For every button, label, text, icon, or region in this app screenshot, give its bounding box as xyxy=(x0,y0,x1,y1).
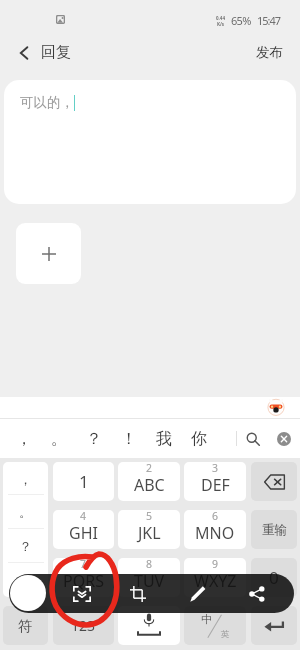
button[interactable]: Edit xyxy=(184,580,212,608)
staticText: ！ xyxy=(19,572,32,588)
button[interactable]: 你 xyxy=(181,419,216,458)
button[interactable]: 2 xyxy=(118,462,180,501)
staticText: 重输 xyxy=(262,522,287,538)
staticText: 5 xyxy=(146,510,153,523)
staticText: 英 xyxy=(221,629,230,640)
button[interactable]: 符 xyxy=(3,606,48,645)
staticText: 2 xyxy=(146,462,153,475)
staticText: ！ xyxy=(121,429,137,449)
staticText: 。 xyxy=(19,504,32,520)
staticText: ， xyxy=(19,471,32,487)
staticText: ？ xyxy=(19,538,32,554)
button[interactable]: 7 xyxy=(53,558,114,597)
staticText: PQRS xyxy=(63,570,104,592)
button[interactable]: Scroll capture xyxy=(67,580,97,608)
button[interactable]: Add image xyxy=(16,223,81,284)
staticText: GHI xyxy=(69,522,98,544)
staticText: WXYZ xyxy=(194,570,237,592)
button[interactable]: Crop xyxy=(124,580,152,608)
button[interactable] xyxy=(118,606,180,645)
button[interactable]: ？ xyxy=(3,529,48,563)
button[interactable]: ， xyxy=(6,419,41,458)
staticText: 15:47 xyxy=(257,13,281,28)
button[interactable]: 我 xyxy=(146,419,181,458)
button[interactable]: Search xyxy=(237,419,268,458)
staticText: TUV xyxy=(134,570,165,592)
staticText: 可以的， xyxy=(20,94,74,111)
button[interactable]: 5 xyxy=(118,510,180,549)
staticText: 符 xyxy=(18,617,33,635)
button[interactable]: Share xyxy=(243,580,271,608)
button[interactable]: Close keyboard xyxy=(268,419,299,458)
button[interactable]: 123 xyxy=(53,606,114,645)
button[interactable]: 。 xyxy=(3,495,48,529)
button[interactable]: Input method logo xyxy=(267,398,285,416)
staticText: 发布 xyxy=(256,44,283,61)
staticText: 你 xyxy=(191,429,207,449)
button[interactable]: 可以的， xyxy=(4,80,296,204)
staticText: 9 xyxy=(212,558,219,571)
staticText: 我 xyxy=(156,429,172,449)
button[interactable]: ！ xyxy=(3,563,48,597)
staticText: ， xyxy=(16,429,32,449)
button[interactable]: 3 xyxy=(184,462,246,501)
button[interactable]: 1 xyxy=(53,462,114,501)
button[interactable] xyxy=(251,462,297,501)
button[interactable]: Screenshot preview xyxy=(10,575,46,611)
staticText: 6 xyxy=(212,510,219,523)
staticText: K/s xyxy=(217,21,225,27)
button[interactable]: 8 xyxy=(118,558,180,597)
button[interactable]: 回复 xyxy=(0,36,83,69)
staticText: 1 xyxy=(79,470,89,493)
staticText: 4 xyxy=(80,510,87,523)
staticText: ？ xyxy=(86,429,102,449)
staticText: 。 xyxy=(51,429,67,449)
staticText: 8 xyxy=(146,558,153,571)
staticText: DEF xyxy=(201,474,230,496)
staticText: 3 xyxy=(212,462,219,475)
staticText: MNO xyxy=(195,522,235,544)
button[interactable]: 6 xyxy=(184,510,246,549)
staticText: 中 xyxy=(201,612,212,626)
button[interactable]: 重输 xyxy=(251,510,297,549)
button[interactable]: 4 xyxy=(53,510,114,549)
staticText: ABC xyxy=(134,474,165,496)
staticText: 0.44 xyxy=(216,15,225,21)
staticText: 123 xyxy=(71,616,96,635)
button[interactable]: 中 xyxy=(184,606,246,645)
button[interactable] xyxy=(251,606,297,645)
staticText: JKL xyxy=(138,522,161,544)
button[interactable]: 0 xyxy=(251,558,297,597)
button[interactable]: ！ xyxy=(111,419,146,458)
button[interactable]: 9 xyxy=(184,558,246,597)
button[interactable]: 。 xyxy=(41,419,76,458)
button[interactable]: ？ xyxy=(76,419,111,458)
staticText: 7 xyxy=(80,558,87,571)
staticText: 0 xyxy=(269,566,279,589)
staticText: 回复 xyxy=(41,43,71,62)
staticText: 65% xyxy=(231,13,251,28)
button[interactable]: 发布 xyxy=(240,36,300,69)
button[interactable]: ， xyxy=(3,462,48,495)
